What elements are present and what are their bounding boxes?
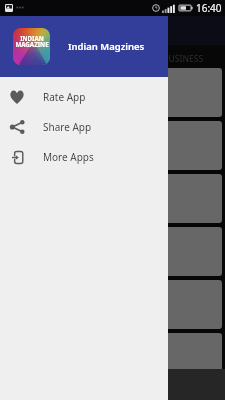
- button[interactable]: [162, 68, 222, 117]
- button[interactable]: INDIAN MAGAZINE: [0, 16, 168, 77]
- staticText: BUSINESS: [163, 53, 204, 65]
- other: Share App: [10, 120, 25, 134]
- other: More Apps: [12, 151, 23, 164]
- button[interactable]: [162, 121, 222, 170]
- staticText: Indian Magzines: [68, 40, 145, 53]
- button[interactable]: Rate App: [0, 82, 168, 112]
- staticText: More Apps: [43, 150, 94, 164]
- button[interactable]: Share App: [0, 112, 168, 142]
- other: Rate App: [10, 90, 24, 104]
- staticText: Rate App: [43, 90, 86, 104]
- button[interactable]: [162, 227, 222, 276]
- staticText: INDIAN MAGAZINE: [15, 34, 49, 49]
- button[interactable]: More Apps: [0, 142, 168, 172]
- staticText: Share App: [43, 120, 92, 134]
- button[interactable]: [162, 280, 222, 329]
- button[interactable]: [162, 333, 222, 382]
- button[interactable]: [162, 174, 222, 223]
- staticText: 16:40: [196, 1, 222, 15]
